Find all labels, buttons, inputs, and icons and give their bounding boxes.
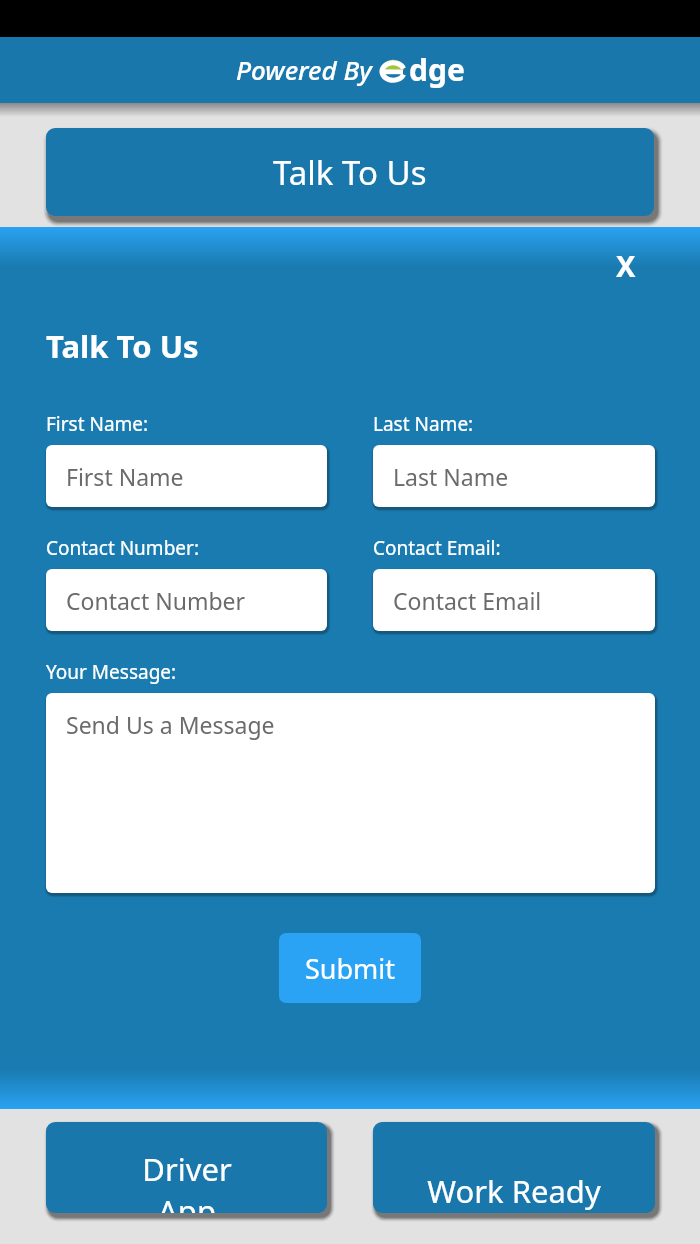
button[interactable]: First Name <box>46 445 327 507</box>
button[interactable]: Close <box>604 243 648 287</box>
staticText: X <box>616 246 636 285</box>
staticText: Contact Number <box>66 585 246 616</box>
button[interactable]: Send Us a Message <box>46 693 655 893</box>
staticText: Last Name <box>393 461 509 492</box>
staticText: Your Message: <box>46 659 177 685</box>
button[interactable]: Last Name <box>373 445 655 507</box>
staticText: Contact Number: <box>46 535 199 561</box>
staticText: Work Ready App <box>427 1170 601 1213</box>
staticText: Powered By <box>236 52 379 87</box>
staticText: Talk To Us <box>273 150 427 195</box>
staticText: Last Name: <box>373 411 474 437</box>
button[interactable]: Contact Email <box>373 569 655 631</box>
button[interactable]: Submit <box>279 933 421 1003</box>
staticText: Contact Email <box>393 585 542 616</box>
staticText: First Name <box>66 461 184 492</box>
staticText: Send Us a Message <box>66 709 275 740</box>
staticText: Submit <box>305 950 396 987</box>
button[interactable]: Contact Number <box>46 569 327 631</box>
staticText: dge <box>409 49 465 90</box>
button[interactable]: Talk To Us <box>46 128 654 216</box>
staticText: Driver App <box>142 1148 232 1213</box>
staticText: Talk To Us <box>46 325 199 367</box>
button[interactable]: Work Ready App <box>373 1122 655 1213</box>
button[interactable]: Driver App <box>46 1122 327 1213</box>
staticText: Contact Email: <box>373 535 501 561</box>
staticText: First Name: <box>46 411 149 437</box>
